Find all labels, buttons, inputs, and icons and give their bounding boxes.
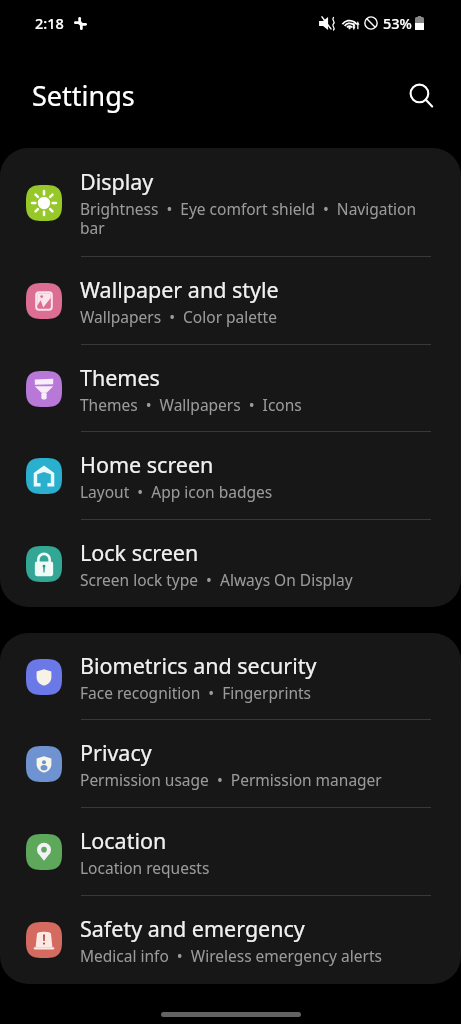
button[interactable]: Lock screen (0, 520, 461, 607)
staticText: Biometrics and security (80, 651, 317, 680)
button[interactable]: Themes (0, 345, 461, 432)
staticText: Layout • App icon badges (80, 481, 273, 502)
button[interactable]: Display (0, 148, 461, 257)
staticText: Location (80, 826, 167, 855)
button[interactable]: Home screen (0, 432, 461, 520)
staticText: Wallpaper and style (80, 275, 279, 304)
button[interactable]: Search (398, 73, 444, 119)
staticText: Settings (32, 77, 135, 114)
button[interactable]: Location (0, 808, 461, 896)
staticText: Medical info • Wireless emergency alerts (80, 945, 382, 966)
button[interactable]: Biometrics and security (0, 633, 461, 720)
staticText: Face recognition • Fingerprints (80, 682, 312, 703)
button[interactable]: Wallpaper and style (0, 257, 461, 345)
staticText: Location requests (80, 857, 210, 878)
staticText: Wallpapers • Color palette (80, 306, 277, 327)
staticText: Privacy (80, 738, 152, 767)
staticText: Lock screen (80, 538, 199, 567)
staticText: Themes • Wallpapers • Icons (80, 394, 302, 415)
staticText: Display (80, 167, 154, 196)
staticText: Brightness • Eye comfort shield • Naviga… (80, 198, 432, 238)
button[interactable]: Safety and emergency (0, 896, 461, 984)
staticText: 2:18 (35, 13, 64, 33)
staticText: 53% (383, 13, 412, 33)
staticText: Home screen (80, 450, 214, 479)
staticText: Permission usage • Permission manager (80, 769, 382, 790)
button[interactable]: Privacy (0, 720, 461, 808)
staticText: Themes (80, 363, 160, 392)
staticText: Screen lock type • Always On Display (80, 569, 353, 590)
staticText: Safety and emergency (80, 914, 305, 943)
